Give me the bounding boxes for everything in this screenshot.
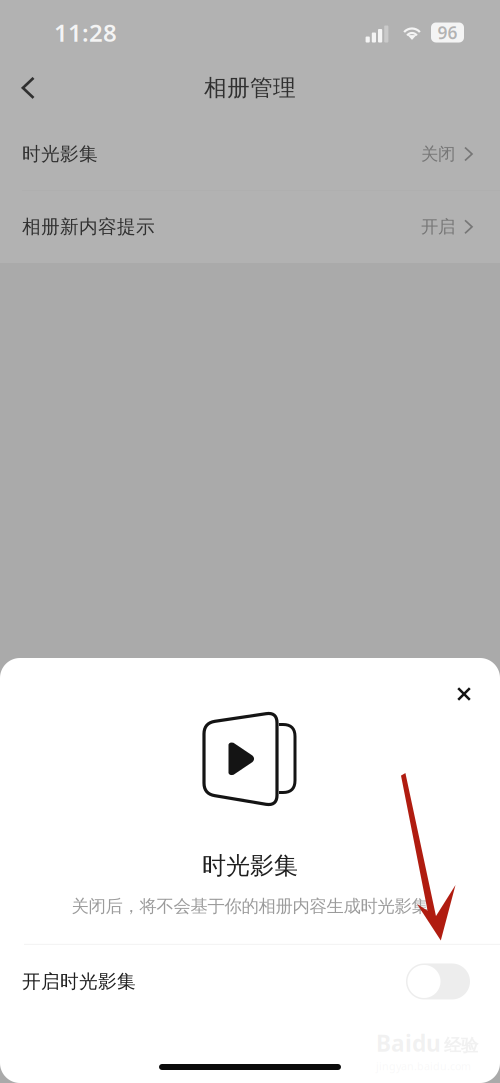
staticText: 96 <box>437 21 457 44</box>
staticText: 关闭后，将不会基于你的相册内容生成时光影集 <box>71 895 428 917</box>
button[interactable]: Close <box>442 672 486 716</box>
staticText: 11:28 <box>54 17 117 48</box>
staticText: 关闭 <box>421 143 455 165</box>
button[interactable]: 时光影集 <box>0 118 500 190</box>
staticText: Baidu <box>376 1028 441 1058</box>
staticText: 开启 <box>421 216 455 237</box>
staticText: 经验 <box>444 1035 478 1056</box>
button[interactable]: 开启时光影集 <box>0 945 500 1018</box>
staticText: 相册新内容提示 <box>22 215 155 238</box>
button[interactable]: Back <box>6 66 50 110</box>
staticText: 开启时光影集 <box>22 970 136 993</box>
staticText: 时光影集 <box>202 851 298 880</box>
staticText: 时光影集 <box>22 142 98 165</box>
button[interactable]: 相册新内容提示 <box>0 191 500 263</box>
staticText: 相册管理 <box>204 74 296 102</box>
